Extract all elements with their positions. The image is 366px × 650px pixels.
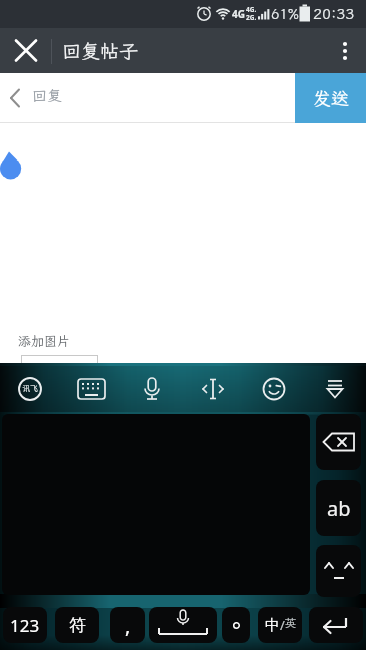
staticText: 发送 — [313, 86, 349, 110]
button[interactable]: ab — [316, 480, 361, 536]
staticText: 20:33 — [313, 4, 355, 24]
staticText: 英 — [285, 616, 296, 630]
staticText: 讯飞 — [22, 383, 38, 394]
staticText: 回复 — [32, 86, 63, 106]
staticText: 回复帖子 — [62, 38, 139, 63]
button[interactable] — [313, 367, 357, 411]
button[interactable] — [149, 607, 217, 643]
button[interactable] — [69, 367, 113, 411]
staticText: 添加图片 — [18, 333, 71, 350]
button[interactable] — [191, 367, 235, 411]
staticText: 61% — [271, 5, 299, 23]
staticText: ab — [327, 495, 351, 522]
button[interactable] — [6, 30, 46, 71]
button[interactable] — [21, 355, 98, 375]
staticText: 2G. — [246, 13, 257, 22]
staticText: , — [125, 612, 131, 639]
button[interactable] — [222, 607, 250, 643]
staticText: 符 — [69, 615, 86, 636]
button[interactable] — [130, 367, 174, 411]
staticText: 4G. — [246, 5, 257, 14]
button[interactable]: 回复 — [0, 73, 80, 123]
button[interactable] — [309, 607, 363, 643]
staticText: 4G — [232, 7, 245, 21]
staticText: 123 — [10, 614, 40, 637]
button[interactable] — [316, 545, 361, 597]
staticText: 中 — [265, 616, 280, 635]
button[interactable] — [330, 34, 360, 68]
button[interactable]: , — [110, 607, 145, 643]
button[interactable]: 中 — [258, 607, 302, 643]
button[interactable] — [8, 367, 52, 411]
button[interactable]: 符 — [55, 607, 99, 643]
button[interactable] — [316, 414, 361, 470]
button[interactable]: 发送 — [295, 73, 366, 123]
button[interactable] — [252, 367, 296, 411]
button[interactable]: 123 — [3, 607, 47, 643]
staticText: / — [280, 616, 285, 634]
